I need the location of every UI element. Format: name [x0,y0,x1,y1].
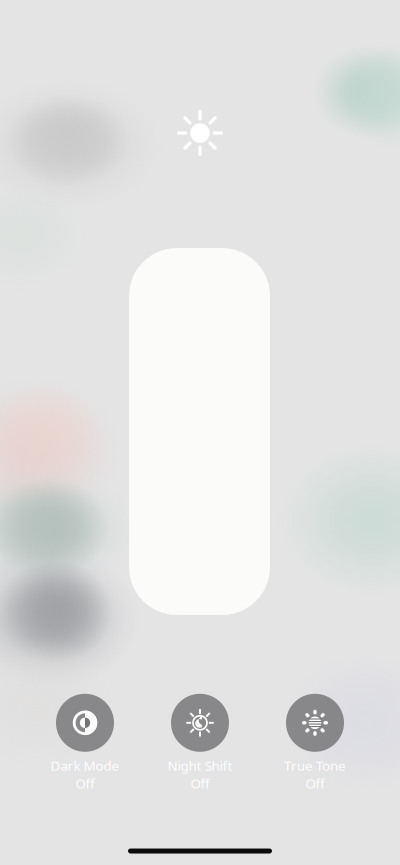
button[interactable]: True Tone [260,694,370,792]
staticText: True Tone [284,757,346,774]
staticText: Off [75,774,94,792]
staticText: Night Shift [167,757,232,774]
button[interactable]: Dark Mode [30,694,140,792]
staticText: Off [305,774,324,792]
staticText: Dark Mode [50,757,119,774]
button[interactable]: Brightness [129,248,270,615]
staticText: Off [190,774,209,792]
button[interactable]: Night Shift [145,694,255,792]
